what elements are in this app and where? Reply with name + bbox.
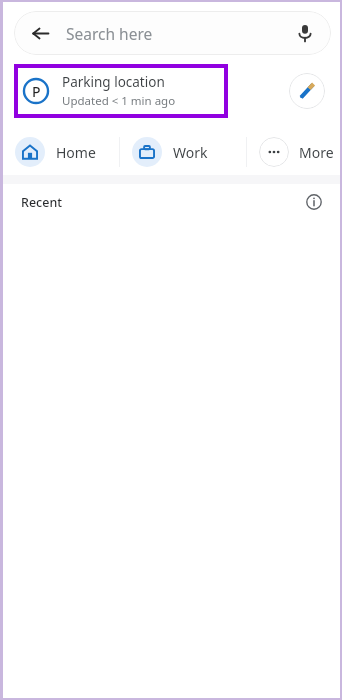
- button[interactable]: P: [14, 64, 228, 118]
- staticText: Home: [56, 143, 96, 162]
- button[interactable]: Back: [28, 21, 52, 45]
- staticText: Updated < 1 min ago: [62, 93, 176, 109]
- button[interactable]: More: [259, 129, 334, 175]
- button[interactable]: Home: [15, 129, 119, 175]
- staticText: More: [299, 143, 334, 162]
- staticText: Parking location: [62, 73, 165, 91]
- button[interactable]: Voice search: [293, 21, 317, 45]
- staticText: Work: [173, 143, 208, 162]
- button[interactable]: Work: [132, 129, 246, 175]
- button[interactable]: About recent places: [303, 191, 325, 213]
- staticText: Search here: [66, 23, 153, 44]
- staticText: P: [32, 82, 41, 101]
- button[interactable]: Back: [14, 11, 331, 55]
- staticText: Recent: [21, 194, 63, 211]
- button[interactable]: Edit parking location: [289, 73, 325, 109]
